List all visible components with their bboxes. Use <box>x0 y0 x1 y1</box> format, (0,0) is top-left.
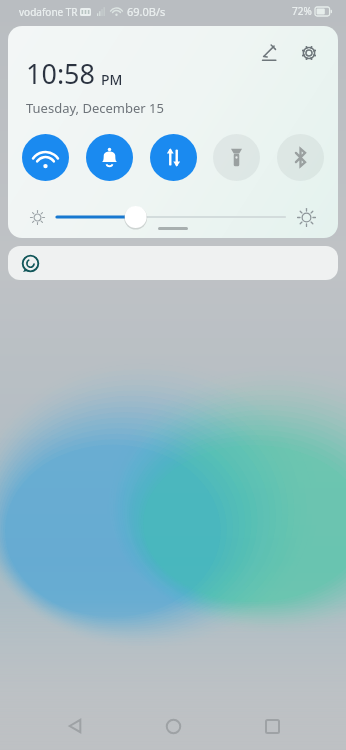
staticText: 72% <box>292 4 312 18</box>
button[interactable]: Settings <box>292 36 326 70</box>
staticText: Tuesday, December 15 <box>26 99 164 117</box>
staticText: 69.0B/s <box>127 4 166 19</box>
button[interactable] <box>8 246 338 280</box>
button[interactable]: Home <box>149 702 197 750</box>
button[interactable]: Wi-Fi <box>22 134 69 181</box>
staticText: vodafone TR <box>19 5 78 19</box>
staticText: PM <box>101 70 123 89</box>
staticText: 10:58 <box>26 55 96 92</box>
button[interactable]: Recents <box>248 702 296 750</box>
button[interactable]: Mobile data <box>150 134 197 181</box>
button[interactable]: Sound <box>86 134 133 181</box>
button[interactable]: Edit quick settings <box>252 36 286 70</box>
button[interactable]: Back <box>51 702 99 750</box>
button[interactable]: Brightness <box>57 204 285 230</box>
button[interactable]: Bluetooth <box>277 134 324 181</box>
button[interactable]: Flashlight <box>213 134 260 181</box>
